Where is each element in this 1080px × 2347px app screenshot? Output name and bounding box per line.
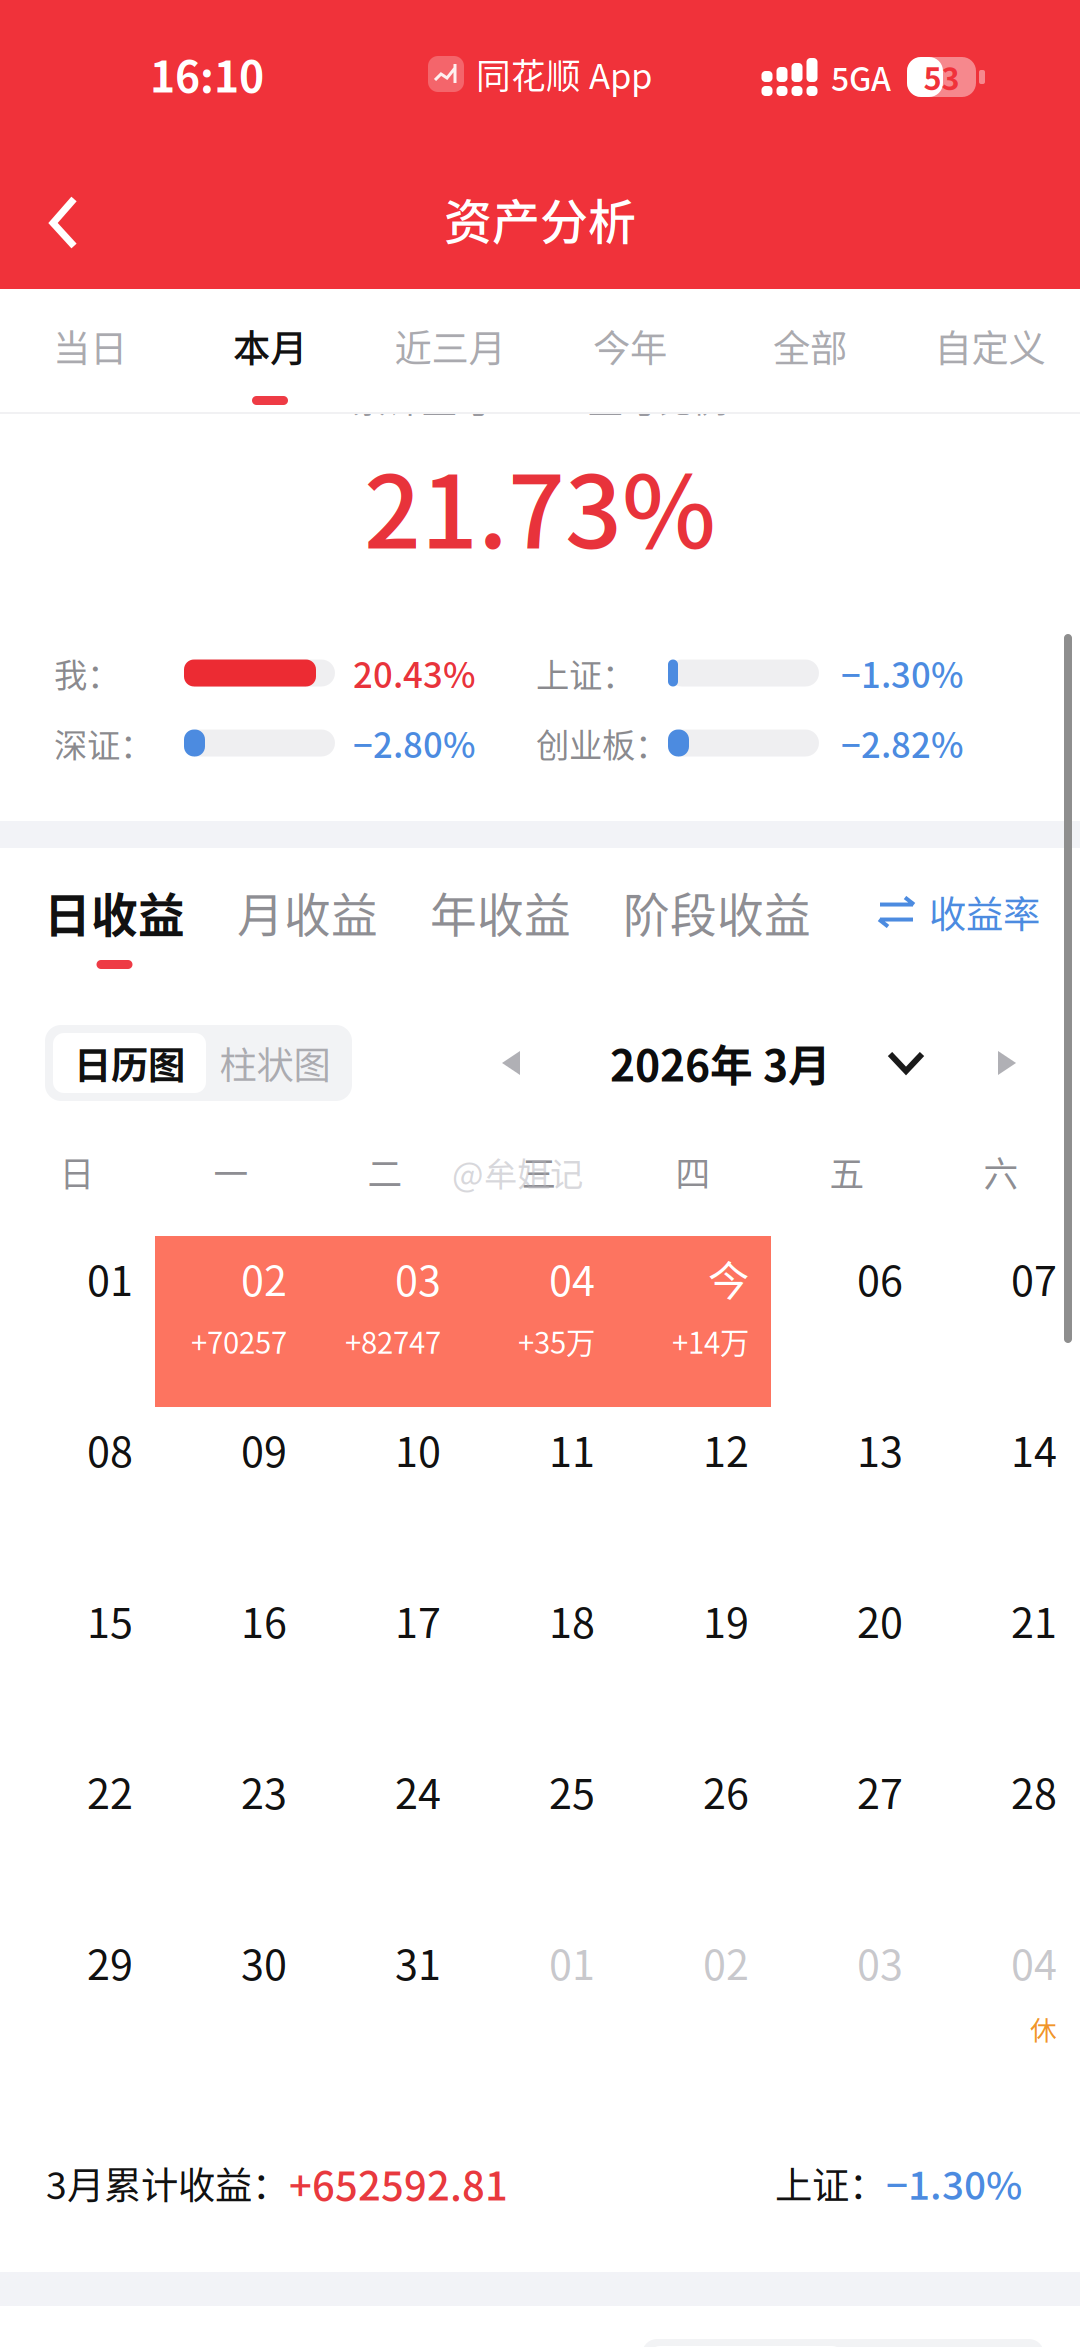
- staticText: 同花顺 App: [476, 49, 652, 99]
- button[interactable]: 全部: [720, 289, 900, 414]
- staticText: 17: [395, 1590, 441, 1650]
- staticText: 深证：: [54, 719, 153, 767]
- staticText: 24: [395, 1761, 441, 1821]
- staticText: 五: [829, 1147, 864, 1197]
- staticText: 27: [857, 1761, 903, 1821]
- button[interactable]: 近三月: [360, 289, 540, 414]
- staticText: 三: [521, 1147, 556, 1197]
- button[interactable]: 下个月: [925, 1025, 1046, 1101]
- staticText: 13: [857, 1419, 903, 1479]
- staticText: 一: [213, 1147, 248, 1197]
- staticText: 04: [1011, 1932, 1057, 1992]
- staticText: 01: [87, 1248, 133, 1308]
- staticText: +70257: [191, 1320, 287, 1362]
- staticText: 近三月: [394, 319, 505, 373]
- staticText: 收益率: [929, 885, 1040, 939]
- staticText: 29: [87, 1932, 133, 1992]
- staticText: 本月: [233, 319, 307, 373]
- button[interactable]: 月收益: [185, 878, 378, 1018]
- staticText: 柱状图: [219, 1036, 330, 1090]
- staticText: 08: [87, 1419, 133, 1479]
- staticText: 31: [395, 1932, 441, 1992]
- staticText: 四: [675, 1147, 710, 1197]
- staticText: 自定义: [934, 319, 1045, 373]
- staticText: +652592.81: [289, 2154, 508, 2212]
- staticText: 全部: [773, 319, 847, 373]
- staticText: 创业板：: [536, 719, 668, 767]
- button[interactable]: 今年: [540, 289, 720, 414]
- staticText: 3月累计收益：: [46, 2156, 289, 2210]
- staticText: 19: [703, 1590, 749, 1650]
- button[interactable]: 本月: [180, 289, 360, 414]
- button[interactable]: 返回: [0, 140, 120, 289]
- staticText: 16: [241, 1590, 287, 1650]
- staticText: @牟姐记: [452, 1148, 583, 1196]
- staticText: 25: [549, 1761, 595, 1821]
- staticText: 53: [923, 55, 959, 99]
- staticText: 02: [241, 1248, 287, 1308]
- staticText: −1.30%: [886, 2155, 1022, 2211]
- staticText: 日历图: [74, 1036, 185, 1090]
- staticText: 2026年 3月: [610, 1032, 831, 1094]
- button[interactable]: 当日: [0, 289, 180, 414]
- staticText: 23: [241, 1761, 287, 1821]
- staticText: 月收益: [237, 878, 378, 946]
- staticText: 六: [983, 1147, 1018, 1197]
- staticText: 03: [857, 1932, 903, 1992]
- staticText: 5GA: [831, 54, 891, 100]
- staticText: 上证：: [536, 649, 635, 697]
- staticText: 二: [367, 1147, 402, 1197]
- staticText: 累计盈亏: [352, 373, 492, 423]
- button[interactable]: 2026年 3月: [610, 1025, 925, 1101]
- staticText: 20: [857, 1590, 903, 1650]
- staticText: 休: [1030, 2009, 1057, 2048]
- staticText: 04: [549, 1248, 595, 1308]
- staticText: 07: [1011, 1248, 1057, 1308]
- staticText: 15: [87, 1590, 133, 1650]
- staticText: 30: [241, 1932, 287, 1992]
- button[interactable]: 阶段收益: [571, 878, 811, 1018]
- staticText: −2.82%: [841, 718, 964, 768]
- staticText: 02: [703, 1932, 749, 1992]
- staticText: 日: [59, 1147, 94, 1197]
- staticText: 11: [549, 1419, 595, 1479]
- staticText: 今: [708, 1248, 749, 1308]
- staticText: 当日: [53, 319, 127, 373]
- staticText: 资产分析: [444, 184, 636, 253]
- staticText: 26: [703, 1761, 749, 1821]
- staticText: 06: [857, 1248, 903, 1308]
- staticText: 18: [549, 1590, 595, 1650]
- staticText: −1.30%: [841, 648, 964, 698]
- staticText: 年收益: [430, 878, 571, 946]
- staticText: 10: [395, 1419, 441, 1479]
- staticText: 12: [703, 1419, 749, 1479]
- staticText: +14万: [672, 1320, 749, 1362]
- button[interactable]: 自定义: [900, 289, 1080, 414]
- staticText: 20.43%: [353, 648, 476, 698]
- staticText: 03: [395, 1248, 441, 1308]
- staticText: 09: [241, 1419, 287, 1479]
- button[interactable]: 日历图: [53, 1033, 206, 1093]
- staticText: −2.80%: [353, 718, 476, 768]
- staticText: 01: [549, 1932, 595, 1992]
- staticText: 盈亏比例: [588, 373, 728, 423]
- staticText: 我：: [54, 649, 120, 697]
- staticText: 21.73%: [364, 433, 716, 577]
- staticText: 14: [1011, 1419, 1057, 1479]
- staticText: 16:10: [150, 43, 264, 105]
- staticText: 22: [87, 1761, 133, 1821]
- button[interactable]: 上个月: [502, 1025, 610, 1101]
- staticText: 28: [1011, 1761, 1057, 1821]
- button[interactable]: 日收益: [0, 878, 185, 1018]
- staticText: 日收益: [44, 878, 185, 946]
- staticText: +35万: [518, 1320, 595, 1362]
- staticText: +82747: [345, 1320, 441, 1362]
- button[interactable]: 年收益: [378, 878, 571, 1018]
- staticText: 21: [1011, 1590, 1057, 1650]
- staticText: 上证：: [775, 2156, 886, 2210]
- button[interactable]: 收益率: [879, 878, 1080, 946]
- staticText: 今年: [593, 319, 667, 373]
- staticText: 阶段收益: [623, 878, 811, 946]
- button[interactable]: 柱状图: [206, 1033, 344, 1093]
